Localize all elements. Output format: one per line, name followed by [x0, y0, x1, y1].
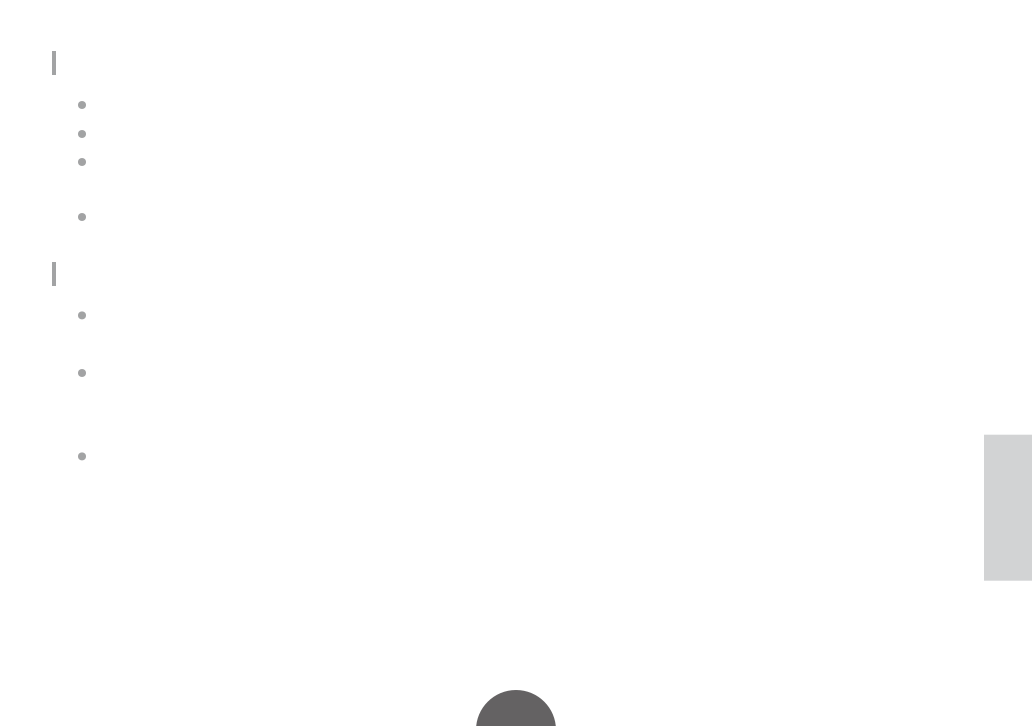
button[interactable]: Item 3	[0, 148, 1032, 176]
button[interactable]: Item 6	[0, 359, 1032, 387]
button[interactable]: Item 7	[0, 442, 1032, 470]
button[interactable]: Item 1	[0, 91, 1032, 119]
button[interactable]: Item 2	[0, 120, 1032, 148]
button[interactable]: Compose	[476, 690, 556, 726]
button[interactable]: Item 4	[0, 203, 1032, 231]
button[interactable]: Item 5	[0, 301, 1032, 329]
